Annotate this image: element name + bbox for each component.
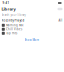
- button[interactable]: Top Hits: [0, 31, 64, 35]
- button[interactable]: All: [58, 19, 62, 22]
- staticText: Top Hits: [6, 31, 17, 35]
- staticText: All: [58, 19, 62, 22]
- staticText: 9:41: [2, 1, 9, 5]
- staticText: Show More: [24, 38, 39, 42]
- staticText: Library: [1, 6, 15, 12]
- staticText: Chill Vibes: [6, 27, 22, 31]
- staticText: Morning Mix: [6, 23, 23, 27]
- button[interactable]: Show More: [0, 38, 64, 42]
- button[interactable]: Chill Vibes: [0, 27, 64, 31]
- staticText: Recently Played: [1, 19, 24, 22]
- button[interactable]: Morning Mix: [0, 23, 64, 27]
- staticText: Search your library: [1, 13, 25, 17]
